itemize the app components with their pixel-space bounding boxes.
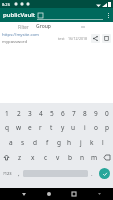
button[interactable]: l [97, 135, 108, 150]
button[interactable]: 0 [101, 106, 112, 120]
staticText: b [68, 153, 72, 162]
button[interactable]: Filter [18, 24, 29, 30]
button[interactable]: u [68, 120, 79, 135]
button[interactable]: Recents [69, 189, 79, 199]
button[interactable]: 6 [57, 106, 68, 120]
button[interactable]: o [90, 120, 101, 135]
button[interactable]: t [46, 120, 57, 135]
staticText: r [39, 123, 42, 132]
button[interactable]: 9 [90, 106, 101, 120]
button[interactable]: s [17, 135, 29, 150]
staticText: p [105, 123, 109, 132]
button[interactable]: Share [90, 33, 101, 44]
staticText: 1 [5, 109, 9, 118]
staticText: u [71, 123, 76, 132]
button[interactable]: Sort [81, 25, 85, 29]
button[interactable]: i [79, 120, 90, 135]
staticText: , [18, 170, 20, 178]
button[interactable]: n [76, 150, 88, 165]
staticText: . [91, 170, 93, 178]
button[interactable]: https://mysite.com [0, 31, 113, 46]
button[interactable]: v [52, 150, 64, 165]
button[interactable]: x [26, 150, 39, 165]
button[interactable]: y [57, 120, 68, 135]
staticText: 5 [50, 109, 54, 118]
button[interactable]: 2 [13, 106, 24, 120]
button[interactable]: Home [44, 189, 54, 199]
button[interactable]: c [39, 150, 52, 165]
staticText: https://mysite.com [2, 32, 40, 38]
staticText: q [5, 123, 9, 132]
button[interactable]: ?123 [0, 165, 15, 182]
staticText: z [18, 153, 22, 162]
button[interactable]: b [64, 150, 76, 165]
button[interactable]: Copy [101, 33, 112, 44]
button[interactable]: Group [36, 23, 51, 30]
staticText: 3 [28, 109, 32, 118]
staticText: 7 [72, 109, 76, 118]
staticText: m [91, 153, 98, 162]
button[interactable]: Back [19, 189, 29, 199]
button[interactable]: e [24, 120, 35, 135]
button[interactable]: w [13, 120, 24, 135]
staticText: 16/12/2018 [68, 36, 88, 41]
staticText: x [31, 153, 35, 162]
staticText: s [21, 138, 25, 147]
staticText: a [9, 138, 13, 147]
button[interactable]: Shift [0, 150, 13, 165]
staticText: ?123 [3, 171, 12, 176]
button[interactable]: Enter [96, 165, 113, 182]
staticText: publicVault [3, 11, 36, 19]
button[interactable]: j [75, 135, 86, 150]
staticText: i [84, 123, 86, 132]
staticText: 6 [61, 109, 65, 118]
button[interactable]: z [13, 150, 26, 165]
staticText: y [61, 123, 65, 132]
staticText: 4 [39, 109, 43, 118]
staticText: e [28, 123, 32, 132]
staticText: o [94, 123, 98, 132]
button[interactable]: m [88, 150, 100, 165]
button[interactable]: h [64, 135, 75, 150]
staticText: mypassword [2, 39, 28, 45]
staticText: 0 [105, 109, 109, 118]
button[interactable]: 3 [24, 106, 35, 120]
button[interactable]: q [1, 120, 13, 135]
staticText: g [57, 138, 61, 147]
button[interactable]: 5 [46, 106, 57, 120]
button[interactable]: 7 [68, 106, 79, 120]
button[interactable]: k [86, 135, 97, 150]
button[interactable]: f [41, 135, 53, 150]
button[interactable]: 8 [79, 106, 90, 120]
button[interactable]: g [53, 135, 64, 150]
button[interactable]: r [35, 120, 46, 135]
staticText: n [80, 153, 85, 162]
staticText: j [80, 138, 82, 147]
staticText: f [46, 138, 49, 147]
button[interactable]: p [101, 120, 112, 135]
button[interactable]: . [88, 165, 96, 182]
staticText: d [33, 138, 37, 147]
staticText: w [16, 123, 22, 132]
staticText: 9 [94, 109, 98, 118]
button[interactable]: More options [104, 8, 113, 22]
button[interactable]: Emoji [15, 165, 23, 182]
button[interactable]: 4 [35, 106, 46, 120]
staticText: test [58, 36, 65, 41]
staticText: k [90, 138, 94, 147]
staticText: v [56, 153, 60, 162]
staticText: h [67, 138, 72, 147]
staticText: l [102, 138, 104, 147]
staticText: 8:26 [2, 2, 10, 7]
button[interactable]: 1 [1, 106, 13, 120]
button[interactable]: Backspace [100, 150, 113, 165]
staticText: c [44, 153, 48, 162]
button[interactable]: Hide keyboard [94, 189, 104, 199]
button[interactable]: d [29, 135, 41, 150]
staticText: t [50, 123, 53, 132]
button[interactable]: a [5, 135, 17, 150]
staticText: 8 [83, 109, 87, 118]
button[interactable]: Select all [38, 13, 43, 18]
staticText: 2 [17, 109, 21, 118]
